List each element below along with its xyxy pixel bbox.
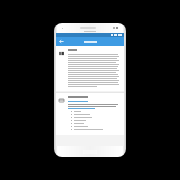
button[interactable] (56, 46, 124, 91)
button[interactable]: Back (56, 37, 66, 46)
button[interactable] (56, 92, 124, 135)
